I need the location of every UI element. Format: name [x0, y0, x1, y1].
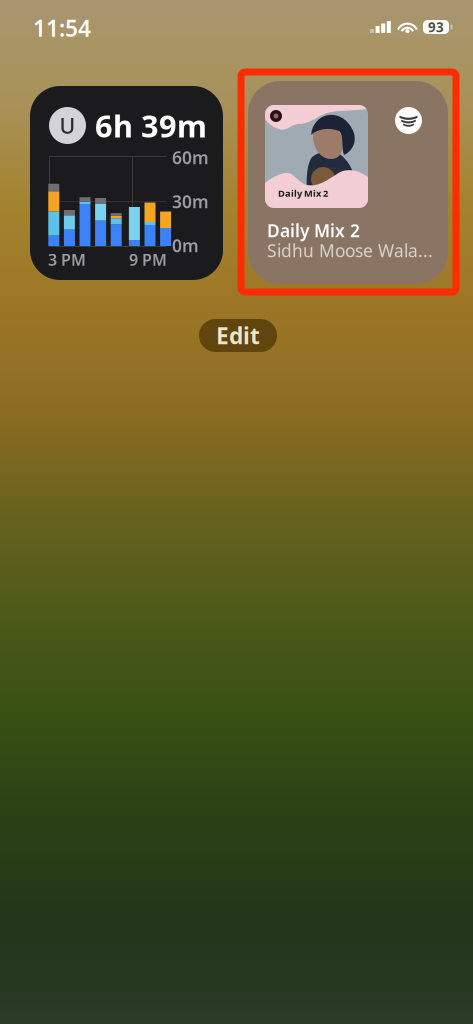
staticText: 0m	[172, 234, 199, 257]
staticText: Daily Mix 2	[278, 187, 328, 199]
staticText: 93	[428, 18, 444, 36]
button[interactable]: Daily Mix 2	[248, 81, 448, 284]
button[interactable]: Edit	[199, 319, 277, 352]
staticText: 60m	[172, 146, 209, 169]
staticText: Sidhu Moose Wala...	[267, 239, 433, 262]
staticText: 11:54	[33, 13, 91, 43]
staticText: U	[59, 111, 75, 140]
staticText: 30m	[172, 190, 209, 213]
staticText: 6h 39m	[95, 105, 207, 146]
staticText: 3 PM	[48, 249, 86, 270]
button[interactable]: U	[30, 86, 223, 280]
staticText: Edit	[216, 320, 260, 350]
staticText: Daily Mix 2	[267, 219, 360, 242]
staticText: 9 PM	[129, 249, 167, 270]
